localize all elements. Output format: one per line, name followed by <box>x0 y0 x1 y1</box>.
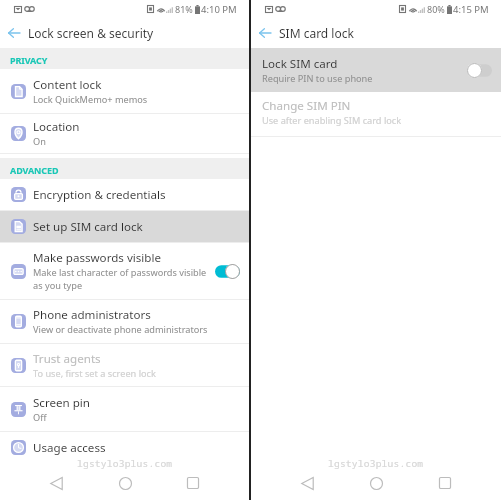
button[interactable]: Recent apps <box>434 472 456 494</box>
staticText: PRIVACY <box>10 54 48 66</box>
staticText: Phone administrators <box>33 307 151 323</box>
staticText: lgstylo3plus.com <box>328 457 424 470</box>
button[interactable]: Navigate up <box>251 18 279 48</box>
staticText: Off <box>33 411 47 424</box>
button[interactable]: Phone administrators <box>0 300 249 343</box>
staticText: 81% <box>175 3 193 15</box>
staticText: Change SIM PIN <box>262 98 351 114</box>
staticText: Set up SIM card lock <box>33 219 143 235</box>
button[interactable]: Trust agents <box>0 344 249 386</box>
button[interactable]: Back <box>45 472 67 494</box>
button[interactable]: Home <box>365 472 387 494</box>
staticText: Trust agents <box>33 351 101 367</box>
button[interactable]: Home <box>114 472 136 494</box>
button[interactable]: Lock SIM card <box>251 48 501 92</box>
staticText: Lock screen & security <box>28 25 154 41</box>
staticText: ADVANCED <box>10 164 59 176</box>
staticText: Content lock <box>33 77 102 93</box>
staticText: 80% <box>427 3 445 15</box>
staticText: 4:10 PM <box>201 3 237 16</box>
staticText: Use after enabling SIM card lock <box>262 114 402 127</box>
button[interactable]: Make passwords visible toggle <box>215 264 240 279</box>
staticText: To use, first set a screen lock <box>33 367 156 380</box>
button[interactable]: Recent apps <box>182 472 204 494</box>
button[interactable]: Usage access <box>0 432 249 463</box>
button[interactable]: Encryption & credentials <box>0 179 249 210</box>
button[interactable]: Make passwords visible <box>0 243 249 299</box>
staticText: 4:15 PM <box>453 3 489 16</box>
button[interactable]: Lock SIM card toggle <box>467 63 492 78</box>
staticText: Require PIN to use phone <box>262 72 373 85</box>
staticText: Encryption & credentials <box>33 187 166 203</box>
staticText: Screen pin <box>33 395 91 411</box>
button[interactable]: Navigate up <box>0 18 28 48</box>
button[interactable]: Screen pin <box>0 387 249 431</box>
staticText: SIM card lock <box>279 25 354 41</box>
staticText: Usage access <box>33 440 106 456</box>
staticText: Make passwords visible <box>33 250 161 266</box>
button[interactable]: Set up SIM card lock <box>0 211 249 242</box>
staticText: Location <box>33 119 80 135</box>
staticText: Lock QuickMemo+ memos <box>33 93 148 106</box>
button[interactable]: Change SIM PIN <box>251 92 501 136</box>
button[interactable]: Content lock <box>0 69 249 113</box>
staticText: Make last character of passwords visible… <box>33 266 213 292</box>
staticText: View or deactivate phone administrators <box>33 323 208 336</box>
button[interactable]: Back <box>296 472 318 494</box>
button[interactable]: Location <box>0 114 249 153</box>
staticText: lgstylo3plus.com <box>77 457 173 470</box>
staticText: On <box>33 135 46 148</box>
staticText: Lock SIM card <box>262 56 338 72</box>
